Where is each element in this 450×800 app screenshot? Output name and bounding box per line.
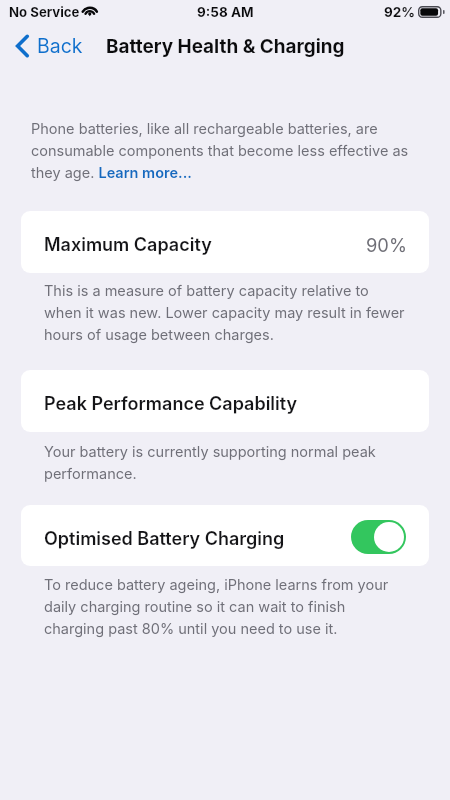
button[interactable]: Optimised Battery Charging — [351, 520, 406, 554]
staticText: This is a measure of battery capacity re… — [44, 282, 408, 343]
staticText: Battery Health & Charging — [106, 35, 345, 58]
staticText: Phone batteries, like all rechargeable b… — [31, 120, 431, 181]
staticText: No Service — [9, 4, 80, 20]
staticText: Your battery is currently supporting nor… — [44, 443, 408, 482]
button[interactable]: Optimised Battery Charging — [21, 505, 429, 566]
staticText: 92% — [384, 4, 415, 20]
button[interactable]: Maximum Capacity — [21, 211, 429, 273]
button[interactable]: Peak Performance Capability — [21, 370, 429, 432]
staticText: To reduce battery ageing, iPhone learns … — [44, 576, 408, 637]
button[interactable]: Back — [15, 34, 83, 58]
staticText: Optimised Battery Charging — [44, 528, 285, 550]
staticText: Maximum Capacity — [44, 234, 212, 256]
staticText: Back — [37, 34, 83, 58]
staticText: Peak Performance Capability — [44, 393, 298, 415]
staticText: 9:58 AM — [197, 4, 254, 20]
staticText: 90% — [366, 234, 407, 256]
